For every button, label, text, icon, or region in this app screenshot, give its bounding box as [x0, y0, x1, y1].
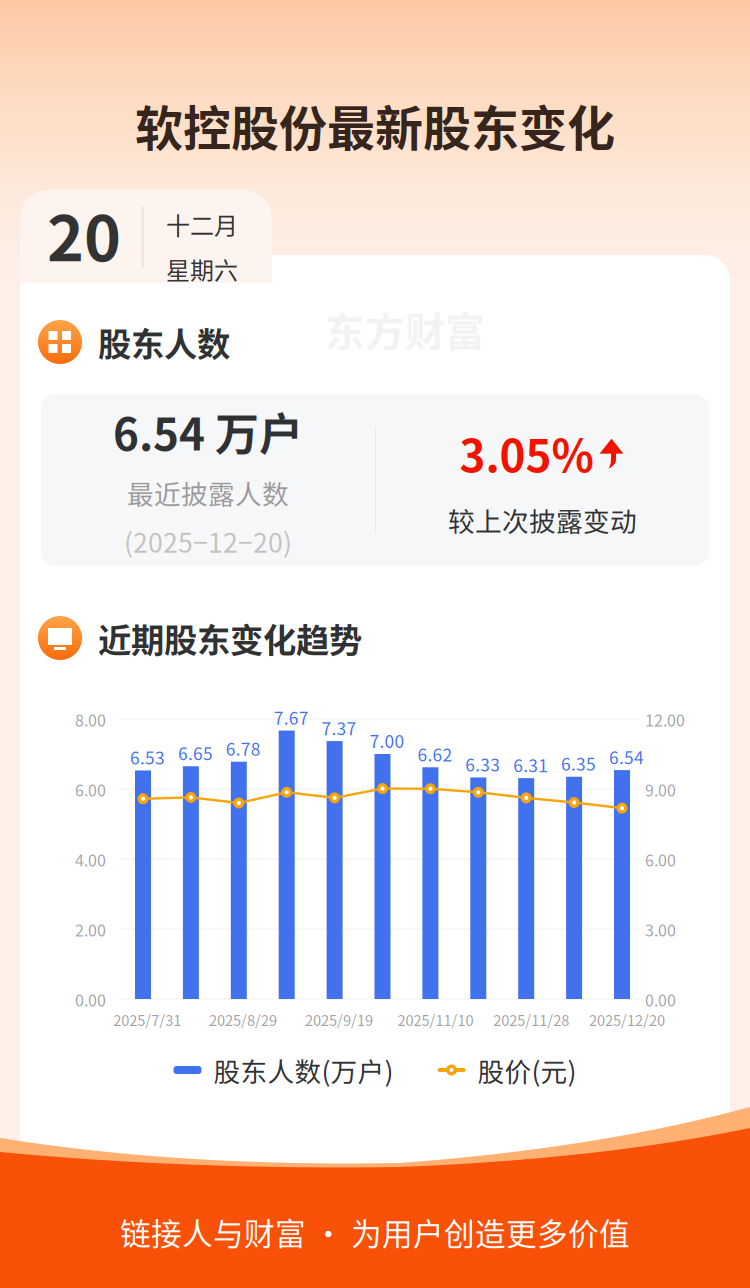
staticText: 股东人数(万户) — [213, 1051, 393, 1089]
staticText: 较上次披露变动 — [448, 500, 637, 539]
staticText: 6.53 — [130, 744, 165, 770]
staticText: 0.00 — [75, 988, 106, 1011]
staticText: 9.00 — [645, 778, 676, 801]
staticText: 8.00 — [75, 708, 106, 731]
staticText: 6.54 — [609, 744, 644, 769]
staticText: 2.00 — [75, 918, 106, 941]
staticText: 7.00 — [369, 728, 404, 753]
staticText: 6.62 — [417, 741, 452, 766]
staticText: 十二月 — [166, 207, 238, 242]
staticText: 0.00 — [645, 988, 676, 1011]
staticText: 12.00 — [645, 708, 685, 731]
staticText: 7.37 — [322, 715, 357, 740]
staticText: 20 — [47, 189, 121, 279]
staticText: 2025/12/20 — [589, 1009, 665, 1030]
staticText: (2025−12−20) — [124, 522, 292, 560]
staticText: 2025/11/28 — [493, 1009, 569, 1030]
staticText: 东方财富 — [325, 300, 485, 358]
staticText: 6.00 — [75, 778, 106, 801]
staticText: 股价(元) — [477, 1051, 576, 1089]
staticText: 6.33 — [465, 751, 500, 777]
staticText: 3.05% — [459, 421, 593, 484]
staticText: 6.78 — [226, 736, 261, 761]
staticText: 星期六 — [166, 252, 238, 287]
staticText: 最近披露人数 — [127, 473, 289, 512]
staticText: 6.00 — [645, 848, 676, 871]
staticText: 6.65 — [178, 740, 213, 765]
staticText: 2025/9/19 — [305, 1009, 373, 1030]
staticText: 近期股东变化趋势 — [98, 614, 362, 662]
staticText: 2025/11/10 — [397, 1009, 473, 1030]
staticText: 3.00 — [645, 918, 676, 941]
staticText: 4.00 — [75, 848, 106, 871]
staticText: 6.54 万户 — [113, 399, 303, 463]
staticText: 7.67 — [274, 704, 309, 730]
staticText: 6.31 — [513, 752, 548, 777]
staticText: 软控股份最新股东变化 — [135, 90, 615, 160]
staticText: 6.35 — [561, 751, 596, 776]
staticText: 2025/7/31 — [113, 1009, 181, 1030]
staticText: 链接人与财富 · 为用户创造更多价值 — [120, 1210, 630, 1254]
staticText: 股东人数 — [98, 318, 230, 366]
staticText: 2025/8/29 — [209, 1009, 277, 1030]
